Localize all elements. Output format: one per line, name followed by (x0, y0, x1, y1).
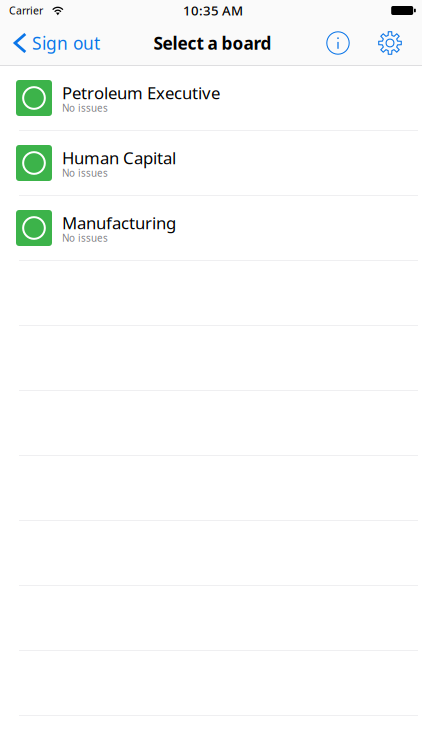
button[interactable]: Info (316, 21, 360, 65)
staticText: 10:35 AM (183, 2, 243, 19)
staticText: No issues (62, 166, 108, 179)
button[interactable]: Petroleum Executive (0, 66, 422, 131)
staticText: Carrier (9, 3, 43, 17)
staticText: Select a board (153, 32, 271, 54)
button[interactable]: Settings (368, 21, 412, 65)
button[interactable]: Sign out (0, 21, 108, 65)
staticText: Sign out (32, 31, 100, 54)
staticText: No issues (62, 101, 108, 114)
button[interactable]: Human Capital (0, 131, 422, 196)
staticText: Human Capital (62, 147, 176, 169)
staticText: Petroleum Executive (62, 82, 220, 104)
staticText: Manufacturing (62, 212, 176, 234)
button[interactable]: Manufacturing (0, 196, 422, 261)
staticText: No issues (62, 231, 108, 244)
